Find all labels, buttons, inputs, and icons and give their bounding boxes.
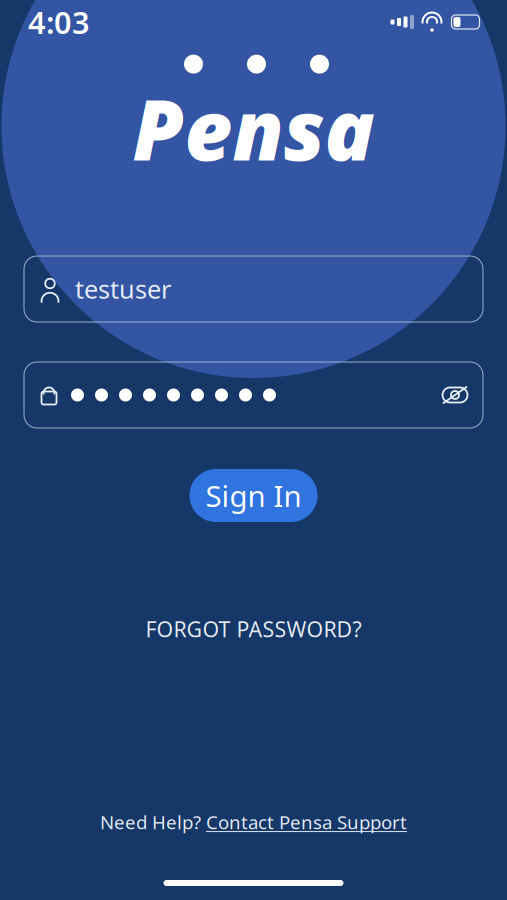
staticText: 4:03: [28, 2, 90, 42]
button[interactable]: Sign In: [189, 469, 317, 522]
button[interactable]: FORGOT PASSWORD?: [24, 611, 483, 647]
staticText: Pensa: [132, 74, 374, 183]
staticText: Contact Pensa Support: [206, 810, 407, 834]
staticText: FORGOT PASSWORD?: [145, 615, 361, 643]
button[interactable]: [24, 362, 427, 428]
staticText: Need Help?: [100, 810, 201, 834]
button[interactable]: Need Help?: [24, 807, 483, 837]
button[interactable]: testuser: [24, 256, 483, 322]
staticText: Sign In: [205, 476, 301, 515]
button[interactable]: Show password: [427, 362, 483, 428]
staticText: testuser: [75, 272, 171, 306]
